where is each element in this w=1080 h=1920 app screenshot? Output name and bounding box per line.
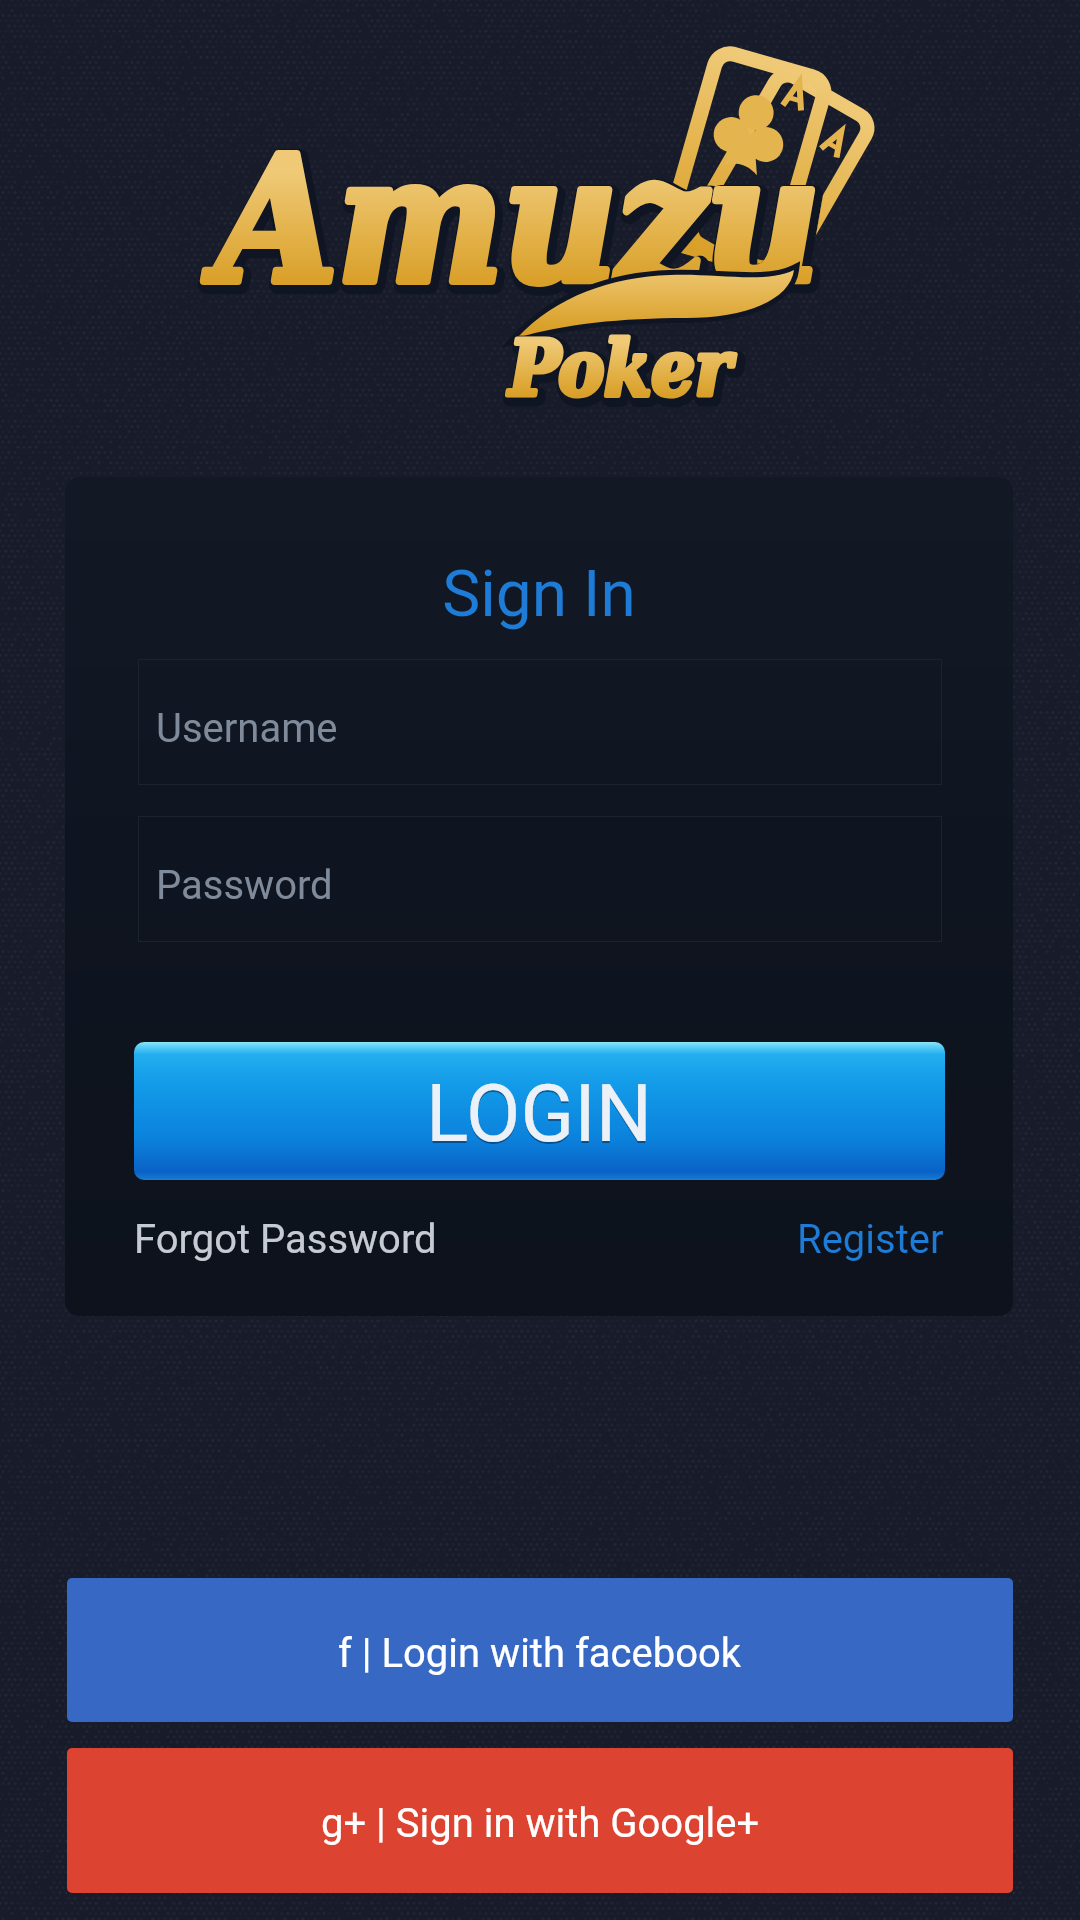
button[interactable]: Forgot Password: [134, 1208, 437, 1271]
button[interactable]: Password: [138, 816, 942, 942]
button[interactable]: Username: [138, 659, 942, 785]
staticText: Poker: [509, 324, 731, 413]
staticText: Amuzu: [219, 122, 823, 326]
staticText: Amuzu: [216, 118, 820, 322]
staticText: Forgot Password: [134, 1216, 437, 1263]
button[interactable]: f | Login with facebook: [67, 1578, 1013, 1722]
button[interactable]: LOGIN: [134, 1042, 945, 1180]
staticText: Amuzu: [219, 122, 823, 326]
staticText: Register: [797, 1216, 944, 1263]
staticText: Sign In: [65, 557, 1013, 632]
button[interactable]: Register: [797, 1208, 944, 1271]
staticText: f | Login with facebook: [338, 1630, 742, 1677]
staticText: Amuzu: [216, 118, 820, 322]
staticText: Poker: [512, 328, 734, 417]
staticText: g+ | Sign in with Google+: [321, 1800, 760, 1847]
staticText: Password: [156, 862, 333, 909]
staticText: LOGIN: [426, 1068, 653, 1161]
staticText: Username: [156, 705, 338, 752]
other: Amuzu Poker logo: [0, 0, 1080, 460]
staticText: LOGIN: [426, 1070, 653, 1163]
staticText: Poker: [509, 324, 731, 413]
staticText: Poker: [512, 328, 734, 417]
button[interactable]: g+ | Sign in with Google+: [67, 1748, 1013, 1893]
